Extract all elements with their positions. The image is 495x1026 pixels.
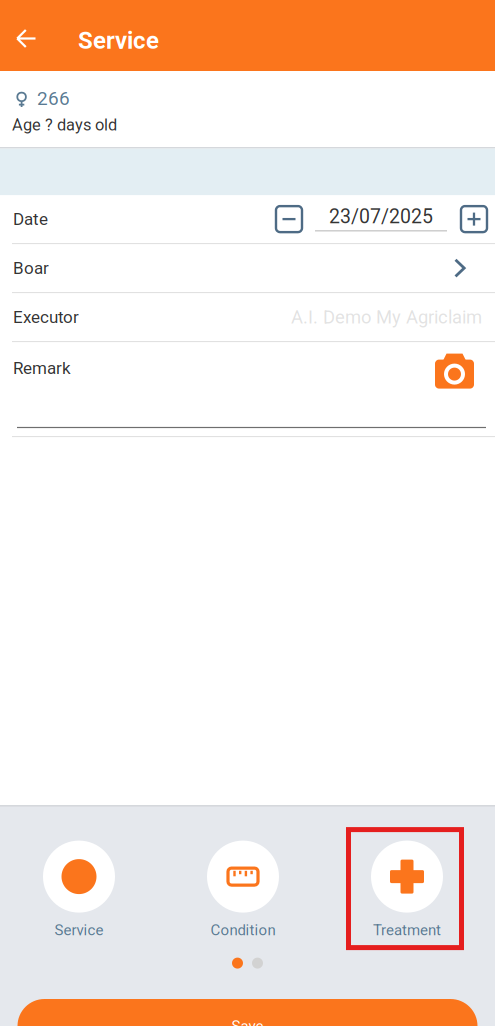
staticText: Treatment bbox=[373, 921, 441, 939]
button[interactable]: Save bbox=[17, 999, 477, 1026]
staticText: Condition bbox=[210, 921, 275, 939]
button[interactable]: Increase date bbox=[461, 206, 487, 232]
button[interactable]: Take photo bbox=[435, 351, 474, 386]
button[interactable]: Treatment bbox=[325, 841, 489, 961]
staticText: Service bbox=[54, 921, 103, 939]
button[interactable]: Condition bbox=[161, 841, 325, 961]
staticText: Save bbox=[231, 1017, 263, 1026]
button[interactable]: Service bbox=[0, 841, 161, 961]
staticText: Remark bbox=[13, 358, 71, 378]
staticText: 266 bbox=[37, 87, 70, 110]
staticText: Executor bbox=[13, 307, 79, 327]
button[interactable]: Boar bbox=[0, 244, 495, 292]
staticText: Age ? days old bbox=[12, 115, 117, 135]
staticText: Service bbox=[78, 26, 159, 54]
button[interactable]: Back bbox=[0, 0, 52, 71]
button[interactable]: Decrease date bbox=[276, 206, 302, 232]
staticText: Date bbox=[13, 209, 48, 229]
staticText: Boar bbox=[13, 258, 49, 278]
staticText: 23/07/2025 bbox=[329, 205, 433, 228]
button[interactable]: Executor bbox=[0, 293, 495, 341]
staticText: A.I. Demo My Agriclaim bbox=[291, 306, 482, 328]
